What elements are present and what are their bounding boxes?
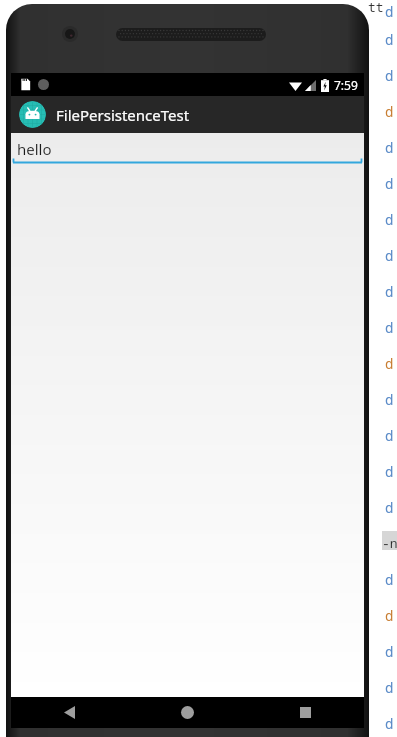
staticText: d — [385, 30, 394, 49]
staticText: d — [385, 282, 394, 301]
button[interactable]: hello — [11, 133, 364, 164]
staticText: d — [385, 102, 394, 121]
staticText: d — [385, 210, 394, 229]
staticText: d — [385, 138, 394, 157]
staticText: tt — [368, 0, 384, 16]
staticText: d — [385, 2, 394, 21]
staticText: d — [385, 642, 394, 661]
staticText: d — [385, 570, 394, 589]
staticText: hello — [17, 139, 52, 159]
staticText: d — [385, 498, 394, 517]
button[interactable]: App icon — [19, 101, 46, 128]
button[interactable]: Back — [11, 697, 128, 728]
staticText: d — [385, 462, 394, 481]
staticText: d — [385, 714, 394, 733]
staticText: d — [385, 354, 394, 373]
staticText: FilePersistenceTest — [56, 105, 190, 125]
staticText: d — [385, 678, 394, 697]
staticText: d — [385, 246, 394, 265]
staticText: d — [385, 426, 394, 445]
staticText: 7:59 — [334, 77, 358, 93]
button[interactable]: Home — [128, 697, 246, 728]
staticText: d — [385, 390, 394, 409]
staticText: d — [385, 66, 394, 85]
staticText: -n — [382, 534, 397, 552]
staticText: d — [385, 318, 394, 337]
staticText: d — [385, 174, 394, 193]
button[interactable]: Recent apps — [246, 697, 364, 728]
staticText: d — [385, 606, 394, 625]
